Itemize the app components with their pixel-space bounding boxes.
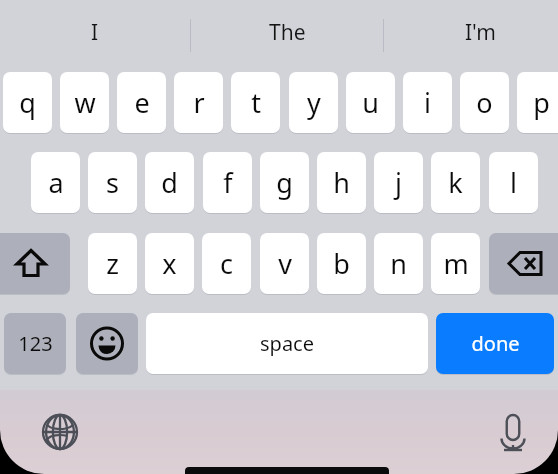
button[interactable]: c (202, 233, 251, 294)
button[interactable]: e (117, 72, 166, 133)
staticText: l (510, 164, 517, 201)
staticText: q (19, 84, 36, 121)
staticText: done (471, 330, 520, 357)
staticText: 123 (18, 330, 53, 357)
button[interactable]: b (317, 233, 366, 294)
button[interactable]: g (260, 152, 309, 213)
staticText: t (251, 84, 261, 121)
button[interactable]: m (431, 233, 480, 294)
staticText: i (424, 84, 431, 121)
staticText: k (448, 164, 463, 201)
button[interactable]: f (203, 152, 252, 213)
button[interactable]: Change keyboard (34, 404, 86, 460)
staticText: u (362, 84, 379, 121)
staticText: d (161, 164, 178, 201)
button[interactable]: I'm (390, 8, 558, 56)
staticText: r (193, 84, 205, 121)
staticText: w (74, 84, 96, 121)
staticText: n (390, 245, 407, 282)
button[interactable]: t (231, 72, 280, 133)
button[interactable]: Dictate (487, 404, 539, 460)
staticText: v (278, 245, 292, 282)
button[interactable]: a (31, 152, 80, 213)
staticText: o (476, 84, 493, 121)
staticText: I'm (465, 18, 496, 47)
button[interactable]: z (88, 233, 137, 294)
staticText: j (395, 164, 402, 201)
button[interactable]: n (374, 233, 423, 294)
button[interactable]: space (146, 313, 428, 374)
button[interactable]: s (88, 152, 137, 213)
staticText: I (91, 18, 99, 47)
button[interactable]: w (60, 72, 109, 133)
button[interactable]: l (489, 152, 538, 213)
staticText: b (333, 245, 350, 282)
button[interactable]: i (403, 72, 452, 133)
staticText: The (269, 18, 306, 47)
button[interactable]: q (3, 72, 52, 133)
button[interactable]: h (317, 152, 366, 213)
button[interactable]: Emoji (76, 313, 138, 374)
staticText: a (48, 164, 64, 201)
staticText: x (162, 245, 177, 282)
staticText: s (106, 164, 119, 201)
button[interactable]: j (374, 152, 423, 213)
button[interactable]: I (5, 8, 185, 56)
staticText: m (443, 245, 469, 282)
button[interactable]: r (174, 72, 223, 133)
staticText: space (260, 330, 314, 357)
button[interactable]: p (517, 72, 558, 133)
staticText: p (533, 84, 550, 121)
button[interactable]: Shift (0, 233, 70, 294)
button[interactable]: d (145, 152, 194, 213)
staticText: c (220, 245, 233, 282)
button[interactable]: u (346, 72, 395, 133)
staticText: e (134, 84, 150, 121)
button[interactable]: done (436, 313, 554, 374)
staticText: h (333, 164, 350, 201)
staticText: g (276, 164, 293, 201)
staticText: y (307, 84, 321, 121)
button[interactable]: Delete (489, 233, 558, 294)
button[interactable]: o (460, 72, 509, 133)
button[interactable]: x (145, 233, 194, 294)
button[interactable]: y (289, 72, 338, 133)
button[interactable]: The (197, 8, 377, 56)
button[interactable]: v (260, 233, 309, 294)
button[interactable]: k (431, 152, 480, 213)
staticText: f (223, 164, 233, 201)
staticText: z (106, 245, 119, 282)
button[interactable]: 123 (4, 313, 66, 374)
